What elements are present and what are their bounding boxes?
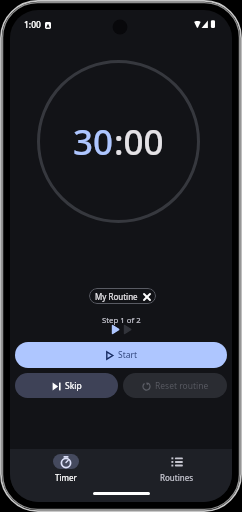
staticText: My Routine xyxy=(95,291,138,302)
button[interactable]: Timer xyxy=(10,454,121,483)
button[interactable]: Start xyxy=(15,342,227,368)
button[interactable]: My Routine xyxy=(89,288,156,304)
staticText: Step 1 of 2 xyxy=(102,315,141,326)
staticText: 30 xyxy=(73,118,114,166)
staticText: Skip xyxy=(65,380,82,392)
staticText: Start xyxy=(118,349,138,361)
button[interactable]: Reset routine xyxy=(123,373,227,398)
staticText: :00 xyxy=(114,118,164,166)
button[interactable]: Routines xyxy=(121,454,232,483)
staticText: 1:00 xyxy=(24,19,41,31)
staticText: Reset routine xyxy=(155,380,209,392)
button[interactable]: Skip xyxy=(15,373,118,398)
staticText: Routines xyxy=(160,472,193,483)
staticText: Timer xyxy=(55,472,77,483)
